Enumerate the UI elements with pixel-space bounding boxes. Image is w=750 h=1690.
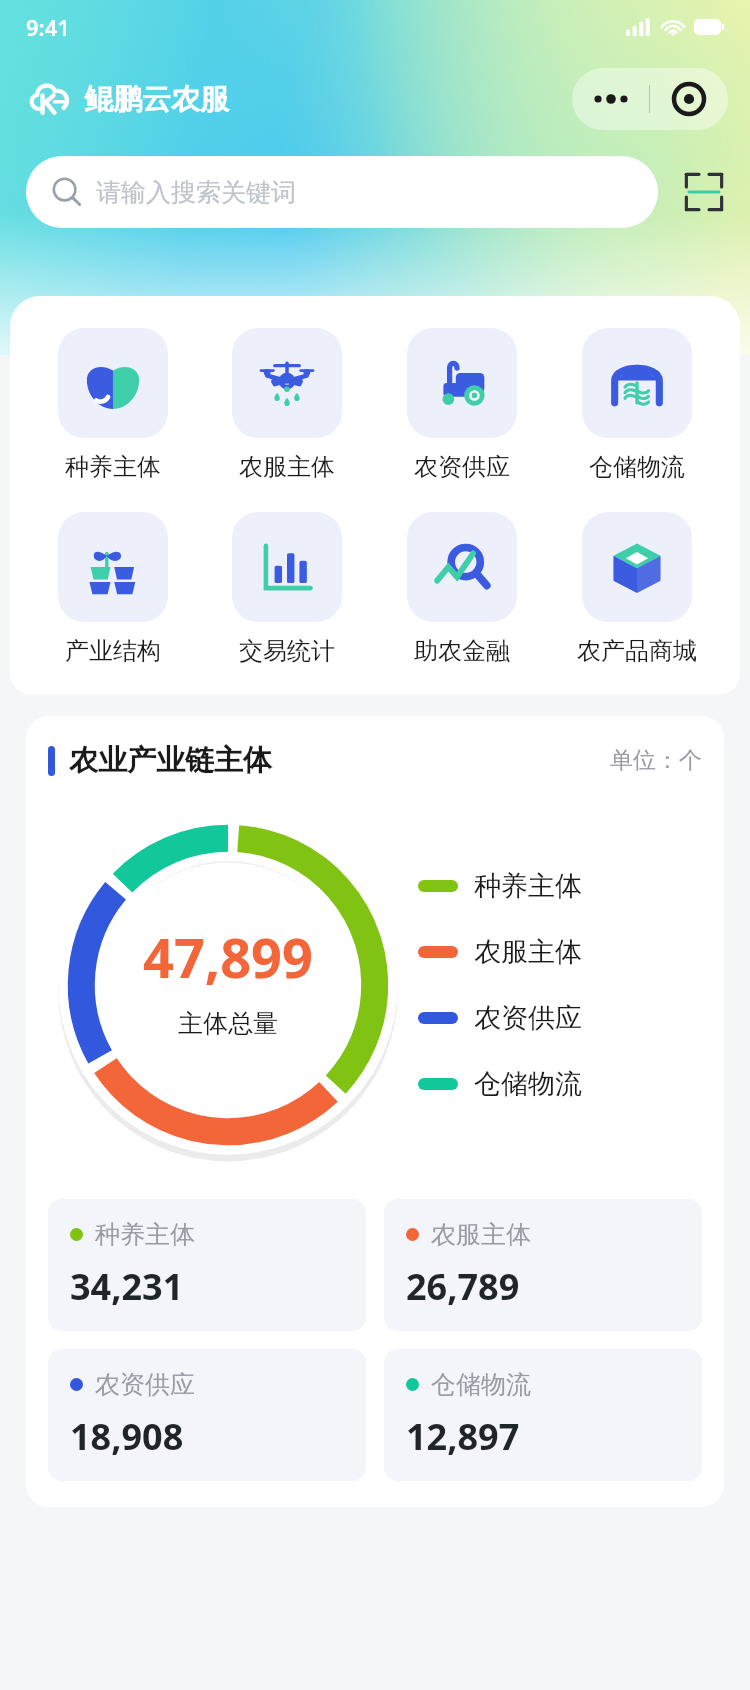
- button[interactable]: 仓储物流: [384, 1349, 702, 1481]
- staticText: 47,899: [143, 920, 313, 994]
- button[interactable]: 助农金融: [374, 510, 549, 668]
- staticText: 农产品商城: [577, 636, 697, 666]
- staticText: 种养主体: [95, 1219, 195, 1250]
- button[interactable]: 请输入搜索关键词: [26, 156, 658, 228]
- button[interactable]: 农服主体: [384, 1199, 702, 1331]
- staticText: 农服主体: [474, 935, 582, 969]
- button[interactable]: 仓储物流: [418, 1067, 582, 1101]
- staticText: 农资供应: [414, 452, 510, 482]
- button[interactable]: 农服主体: [418, 935, 582, 969]
- staticText: 仓储物流: [589, 452, 685, 482]
- staticText: 请输入搜索关键词: [96, 177, 296, 208]
- button[interactable]: 农资供应: [418, 1001, 582, 1035]
- staticText: 农服主体: [239, 452, 335, 482]
- staticText: 鲲鹏云农服: [84, 81, 229, 118]
- button[interactable]: Scan: [680, 168, 728, 216]
- staticText: 农资供应: [95, 1369, 195, 1400]
- button[interactable]: More: [572, 68, 649, 130]
- staticText: 单位：个: [610, 746, 702, 775]
- staticText: 18,908: [70, 1412, 184, 1461]
- staticText: 主体总量: [178, 1008, 278, 1039]
- staticText: 农服主体: [431, 1219, 531, 1250]
- button[interactable]: 种养主体: [26, 326, 200, 484]
- staticText: 助农金融: [414, 636, 510, 666]
- button[interactable]: 农资供应: [48, 1349, 366, 1481]
- staticText: 农业产业链主体: [69, 742, 272, 779]
- staticText: 26,789: [406, 1262, 520, 1311]
- button[interactable]: 农资供应: [374, 326, 549, 484]
- staticText: 种养主体: [65, 452, 161, 482]
- button[interactable]: 种养主体: [418, 869, 582, 903]
- button[interactable]: More: [572, 68, 728, 130]
- staticText: 12,897: [406, 1412, 520, 1461]
- staticText: 产业结构: [65, 636, 161, 666]
- staticText: 农资供应: [474, 1001, 582, 1035]
- button[interactable]: 交易统计: [200, 510, 374, 668]
- staticText: 34,231: [70, 1262, 184, 1311]
- button[interactable]: Close: [650, 68, 728, 130]
- staticText: 种养主体: [474, 869, 582, 903]
- staticText: 仓储物流: [431, 1369, 531, 1400]
- button[interactable]: 产业结构: [26, 510, 200, 668]
- staticText: 交易统计: [239, 636, 335, 666]
- staticText: 仓储物流: [474, 1067, 582, 1101]
- button[interactable]: 仓储物流: [549, 326, 724, 484]
- button[interactable]: 农服主体: [200, 326, 374, 484]
- staticText: 9:41: [26, 12, 70, 42]
- button[interactable]: 种养主体: [48, 1199, 366, 1331]
- button[interactable]: 农产品商城: [549, 510, 724, 668]
